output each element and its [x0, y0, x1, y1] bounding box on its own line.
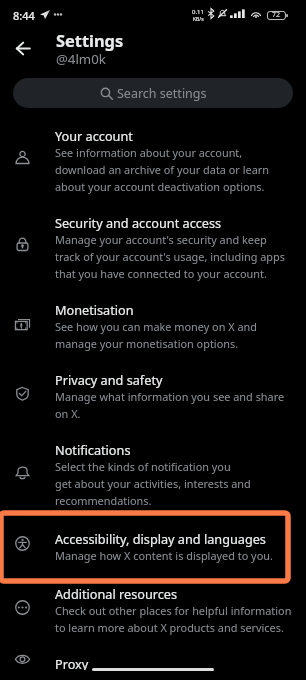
staticText: Check out other places for helpful infor…: [55, 602, 292, 636]
staticText: KB/s: [193, 16, 204, 23]
staticText: Manage how X content is displayed to you…: [55, 547, 273, 564]
staticText: See information about your account, down…: [55, 144, 269, 195]
staticText: 72: [272, 10, 281, 20]
button[interactable]: Security and account access: [0, 205, 306, 292]
staticText: See how you can make money on X and mana…: [55, 318, 257, 352]
staticText: Search settings: [117, 85, 207, 102]
staticText: @4lm0k: [56, 51, 106, 67]
button[interactable]: Proxy: [0, 646, 306, 680]
button[interactable]: Back: [5, 31, 40, 66]
staticText: Accessibility, display and languages: [55, 531, 266, 547]
staticText: Select the kinds of notification you get…: [55, 458, 251, 509]
staticText: 0.11: [192, 8, 204, 16]
staticText: Proxy: [55, 656, 89, 670]
button[interactable]: Monetisation: [0, 292, 306, 362]
button[interactable]: Accessibility, display and languages: [0, 519, 306, 576]
staticText: Privacy and safety: [55, 372, 163, 388]
staticText: Security and account access: [55, 215, 222, 231]
staticText: 8:44: [13, 8, 35, 23]
button[interactable]: Privacy and safety: [0, 362, 306, 432]
staticText: Manage your account's security and keep …: [55, 231, 285, 282]
button[interactable]: Notifications: [0, 432, 306, 519]
button[interactable]: Additional resources: [0, 576, 306, 646]
staticText: Manage what information you see and shar…: [55, 388, 285, 422]
staticText: Monetisation: [55, 302, 134, 318]
button[interactable]: Your account: [0, 118, 306, 205]
button[interactable]: Search settings: [13, 78, 293, 108]
staticText: Notifications: [55, 442, 131, 458]
staticText: Settings: [56, 31, 124, 51]
staticText: Additional resources: [55, 586, 178, 602]
staticText: Your account: [55, 128, 133, 144]
